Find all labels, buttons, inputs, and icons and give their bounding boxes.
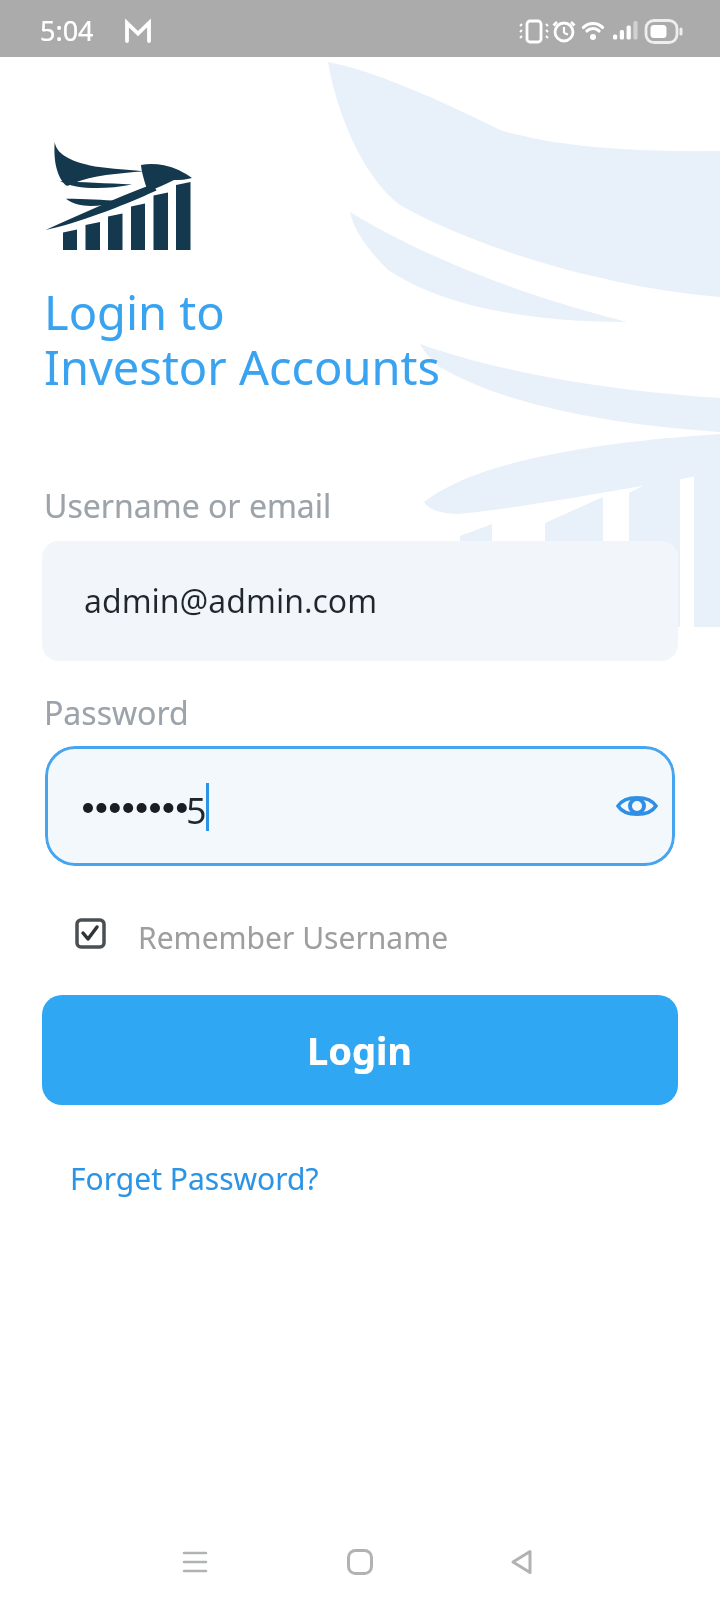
staticText: admin@admin.com	[84, 579, 378, 623]
button[interactable]: Login	[42, 995, 678, 1105]
staticText: Forget Password?	[70, 1158, 319, 1199]
staticText: Login to Investor Accounts	[44, 280, 441, 399]
button[interactable]: Forget Password?	[50, 1142, 299, 1183]
button[interactable]	[158, 1525, 232, 1599]
staticText: Remember Username	[138, 917, 449, 958]
staticText: Username or email	[44, 484, 332, 528]
button[interactable]	[323, 1525, 397, 1599]
button[interactable]: 5	[45, 746, 675, 866]
button[interactable]	[486, 1525, 560, 1599]
button[interactable]: admin@admin.com	[42, 541, 678, 661]
staticText: 5:04	[40, 12, 94, 49]
button[interactable]: Remember Username	[60, 905, 440, 963]
staticText: Login	[307, 1024, 413, 1076]
staticText: 5	[186, 786, 207, 835]
staticText: Password	[44, 691, 189, 735]
